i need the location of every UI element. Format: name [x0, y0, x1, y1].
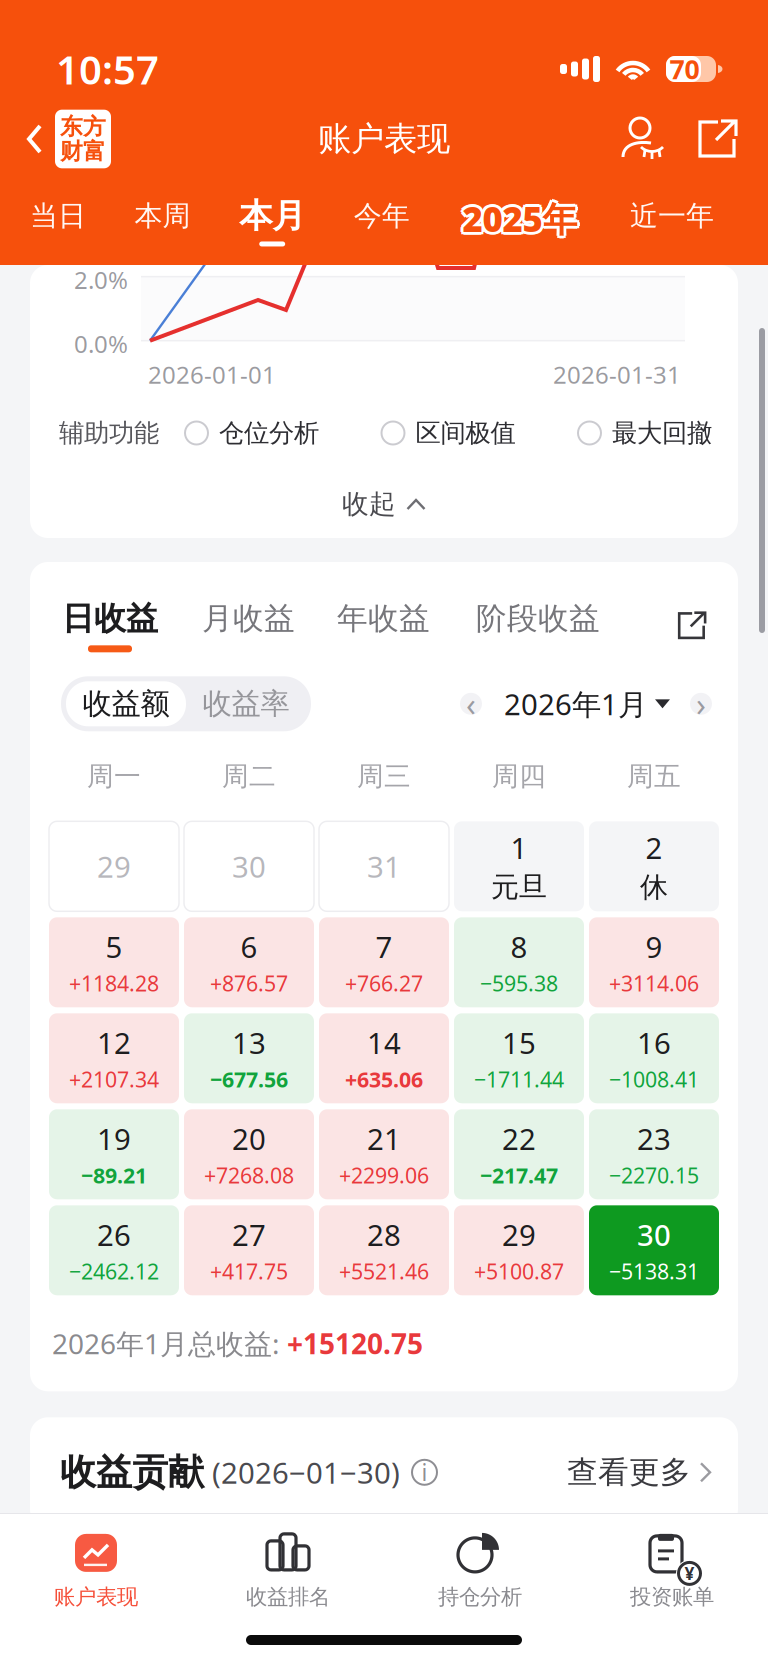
button[interactable]: 本周 [135, 199, 191, 243]
staticText: 15 [502, 1023, 536, 1062]
staticText: 2026年1月总收益: [52, 1325, 287, 1362]
staticText: 2026-01-31 [553, 359, 681, 390]
button[interactable]: 22 [454, 1109, 584, 1199]
button[interactable]: 最大回撤 [578, 417, 712, 448]
staticText: 2025年 [460, 193, 575, 239]
button[interactable]: 26 [49, 1205, 179, 1295]
button[interactable]: 9 [589, 917, 719, 1007]
button[interactable]: 30 [589, 1205, 719, 1295]
staticText: 2025年 [462, 195, 577, 241]
button[interactable]: 5 [49, 917, 179, 1007]
staticText: 16 [637, 1023, 671, 1062]
staticText: 0.0% [74, 328, 128, 360]
button[interactable]: 账户 [622, 116, 666, 162]
button[interactable]: 分享 [675, 610, 708, 641]
staticText: 10:57 [56, 42, 159, 95]
staticText: › [696, 683, 706, 725]
staticText: 今年 [354, 199, 410, 233]
staticText: 本周 [135, 199, 191, 233]
button[interactable]: 14 [319, 1013, 449, 1103]
button[interactable]: 2026年1月 [504, 684, 670, 723]
staticText: −2462.12 [69, 1257, 159, 1285]
button[interactable]: 上个月 [460, 693, 482, 715]
button[interactable]: 下个月 [690, 693, 712, 715]
button[interactable]: 29 [454, 1205, 584, 1295]
button[interactable]: 1 [454, 821, 584, 911]
staticText: +1184.28 [69, 969, 159, 997]
staticText: 2025年 [465, 198, 580, 244]
button[interactable]: 20 [184, 1109, 314, 1199]
button[interactable]: 21 [319, 1109, 449, 1199]
button[interactable]: 31 [319, 821, 449, 911]
staticText: 日收益 [62, 599, 158, 638]
button[interactable]: 收益排名 [192, 1524, 384, 1620]
button[interactable]: 日收益 [62, 599, 158, 652]
button[interactable]: 27 [184, 1205, 314, 1295]
button[interactable]: 28 [319, 1205, 449, 1295]
button[interactable]: 月收益 [202, 600, 295, 651]
button[interactable]: 持仓分析 [384, 1524, 576, 1620]
button[interactable]: 12 [49, 1013, 179, 1103]
staticText: −5138.31 [609, 1257, 699, 1285]
button[interactable]: ¥ [576, 1524, 768, 1620]
staticText: 2025年 [465, 193, 580, 239]
staticText: 账户表现 [54, 1584, 138, 1610]
staticText: i [421, 1457, 427, 1487]
staticText: −595.38 [480, 969, 558, 997]
button[interactable]: 年收益 [337, 600, 430, 651]
button[interactable]: 区间极值 [381, 417, 515, 448]
staticText: 29 [502, 1215, 536, 1254]
button[interactable]: 23 [589, 1109, 719, 1199]
button[interactable]: 30 [184, 821, 314, 911]
staticText: 30 [637, 1215, 671, 1254]
button[interactable]: 16 [589, 1013, 719, 1103]
staticText: +417.75 [210, 1257, 288, 1285]
button[interactable]: 13 [184, 1013, 314, 1103]
staticText: 投资账单 [630, 1584, 714, 1610]
button[interactable]: 6 [184, 917, 314, 1007]
button[interactable]: 29 [49, 821, 179, 911]
button[interactable]: 返回 [26, 110, 111, 168]
staticText: 当日 [30, 199, 86, 233]
button[interactable]: 收益率 [186, 681, 306, 726]
staticText: 周五 [627, 760, 681, 793]
staticText: 周四 [492, 760, 546, 793]
button[interactable]: 15 [454, 1013, 584, 1103]
button[interactable]: 仓位分析 [185, 417, 319, 448]
staticText: 收益率 [202, 686, 289, 722]
staticText: 21 [367, 1119, 401, 1158]
staticText: (2026−01−30) [212, 1453, 400, 1492]
staticText: 周三 [357, 760, 411, 793]
button[interactable]: 8 [454, 917, 584, 1007]
staticText: +2299.06 [339, 1161, 429, 1189]
button[interactable]: 收起 [30, 470, 738, 538]
button[interactable]: 近一年 [630, 199, 714, 243]
button[interactable]: 2025年 [458, 195, 581, 246]
staticText: 7 [375, 927, 392, 966]
button[interactable]: 2 [589, 821, 719, 911]
button[interactable]: 本月 [239, 195, 305, 246]
staticText: −1711.44 [474, 1065, 564, 1093]
staticText: 31 [367, 847, 401, 886]
staticText: +5521.46 [339, 1257, 429, 1285]
button[interactable]: 今年 [354, 199, 410, 243]
button[interactable]: 19 [49, 1109, 179, 1199]
staticText: ‹ [466, 683, 476, 725]
button[interactable]: 账户表现 [0, 1524, 192, 1620]
staticText: 休 [640, 870, 668, 904]
staticText: 2025年 [462, 193, 577, 239]
button[interactable]: 收益额 [66, 681, 186, 726]
staticText: 26 [97, 1215, 131, 1254]
staticText: −2270.15 [609, 1161, 699, 1189]
button[interactable]: 分享 [694, 118, 740, 160]
staticText: 周二 [222, 760, 276, 793]
staticText: 持仓分析 [438, 1584, 522, 1610]
staticText: ¥ [684, 1562, 694, 1585]
button[interactable]: 查看更多 [567, 1453, 712, 1491]
staticText: 阶段收益 [476, 600, 600, 637]
staticText: 14 [367, 1023, 401, 1062]
button[interactable]: 当日 [30, 199, 86, 243]
button[interactable]: 阶段收益 [476, 600, 600, 651]
button[interactable]: 7 [319, 917, 449, 1007]
staticText: 2026年1月 [504, 684, 647, 723]
